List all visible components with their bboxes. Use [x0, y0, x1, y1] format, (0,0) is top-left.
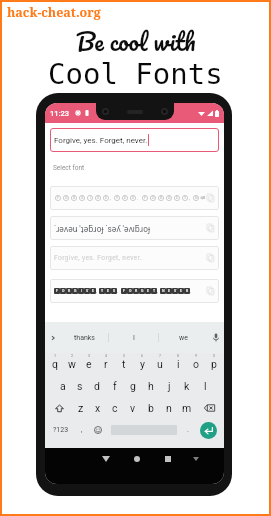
staticText: hack-cheat.org: [7, 4, 101, 21]
button[interactable]: z: [72, 397, 89, 419]
staticText: ?123: [53, 426, 69, 434]
staticText: Be cool with: [76, 21, 196, 61]
button[interactable]: ?123: [46, 419, 75, 441]
staticText: k: [184, 380, 190, 392]
button[interactable]: F: [50, 186, 219, 210]
button[interactable]: l: [196, 375, 214, 397]
staticText: V: [174, 289, 177, 293]
button[interactable]: b: [142, 397, 160, 419]
staticText: ,: [81, 426, 83, 434]
button[interactable]: Recents: [152, 448, 183, 470]
staticText: q: [52, 358, 58, 370]
staticText: O: [65, 196, 68, 200]
staticText: R: [135, 289, 138, 293]
staticText: f: [113, 380, 117, 392]
staticText: I: [90, 196, 91, 200]
staticText: E: [147, 289, 149, 293]
staticText: h: [148, 380, 154, 392]
button[interactable]: thanks: [60, 322, 108, 353]
button[interactable]: c: [106, 397, 124, 419]
button[interactable]: F: [50, 279, 219, 303]
button[interactable]: o: [187, 353, 205, 375]
staticText: N: [162, 289, 165, 293]
staticText: l: [204, 380, 207, 392]
button[interactable]: Forgive, yes. Forget, never.: [50, 246, 219, 270]
button[interactable]: h: [142, 375, 160, 397]
button[interactable]: a: [54, 375, 71, 397]
staticText: R: [186, 289, 189, 293]
button[interactable]: p: [205, 353, 223, 375]
button[interactable]: e: [80, 353, 97, 375]
staticText: c: [112, 402, 118, 414]
staticText: G: [81, 196, 84, 200]
staticText: E: [107, 289, 109, 293]
staticText: V: [86, 289, 89, 293]
button[interactable]: k: [178, 375, 196, 397]
button[interactable]: Emoji: [89, 419, 106, 441]
button[interactable]: u: [151, 353, 169, 375]
staticText: O: [129, 289, 132, 293]
staticText: y: [140, 358, 145, 370]
button[interactable]: More suggestions: [45, 322, 60, 353]
button[interactable]: Back: [90, 448, 121, 470]
staticText: e: [86, 358, 92, 370]
button[interactable]: x: [89, 397, 106, 419]
staticText: w: [68, 358, 76, 370]
staticText: j: [168, 380, 171, 392]
staticText: 0: [213, 354, 215, 358]
button[interactable]: m: [178, 397, 196, 419]
staticText: V: [97, 196, 100, 200]
button[interactable]: f: [106, 375, 124, 397]
button[interactable]: s: [71, 375, 88, 397]
button[interactable]: d: [88, 375, 106, 397]
staticText: v: [130, 402, 136, 414]
staticText: E: [105, 196, 107, 200]
staticText: I: [133, 334, 135, 342]
button[interactable]: j: [160, 375, 178, 397]
staticText: n: [166, 402, 172, 414]
button[interactable]: q: [46, 353, 63, 375]
staticText: ,: [96, 288, 97, 294]
button[interactable]: Enter: [200, 422, 217, 439]
button[interactable]: Backspace: [197, 397, 222, 419]
button[interactable]: we: [159, 322, 208, 353]
staticText: Y: [116, 196, 119, 200]
button[interactable]: Home: [121, 448, 152, 470]
button[interactable]: n: [160, 397, 178, 419]
button[interactable]: r: [97, 353, 115, 375]
staticText: Y: [101, 289, 104, 293]
button[interactable]: Comma: [75, 419, 89, 441]
staticText: u: [157, 358, 163, 370]
button[interactable]: Period: [182, 419, 193, 441]
staticText: 3: [88, 354, 90, 358]
staticText: R: [73, 196, 76, 200]
staticText: s: [77, 380, 83, 392]
staticText: F: [56, 289, 58, 293]
button[interactable]: Shift: [47, 397, 71, 419]
staticText: O: [152, 196, 155, 200]
staticText: 2: [71, 354, 73, 358]
staticText: O: [62, 289, 65, 293]
button[interactable]: v: [124, 397, 142, 419]
button[interactable]: I: [109, 322, 158, 353]
staticText: G: [74, 289, 77, 293]
button[interactable]: t: [115, 353, 133, 375]
staticText: r: [104, 358, 108, 370]
button[interactable]: i: [169, 353, 187, 375]
staticText: E: [168, 289, 170, 293]
staticText: ˙ɹǝʌǝu 'ʇǝƃɹoɟ ˙sǝʎ 'ǝʌıƃɹoɟ: [54, 223, 151, 234]
staticText: E: [124, 196, 126, 200]
button[interactable]: g: [124, 375, 142, 397]
staticText: 6: [141, 354, 143, 358]
button[interactable]: y: [133, 353, 151, 375]
staticText: p: [211, 358, 217, 370]
button[interactable]: Hide keyboard: [183, 448, 209, 470]
staticText: Forgive, yes. Forget, never.: [54, 254, 143, 262]
button[interactable]: Forgive, yes. Forget, never.: [50, 128, 219, 152]
button[interactable]: Voice input: [208, 322, 224, 353]
staticText: E: [180, 289, 182, 293]
button[interactable]: ˙ɹǝʌǝu 'ʇǝƃɹoɟ ˙sǝʎ 'ǝʌıƃɹoɟ: [50, 216, 219, 240]
staticText: z: [78, 402, 84, 414]
button[interactable]: w: [63, 353, 80, 375]
